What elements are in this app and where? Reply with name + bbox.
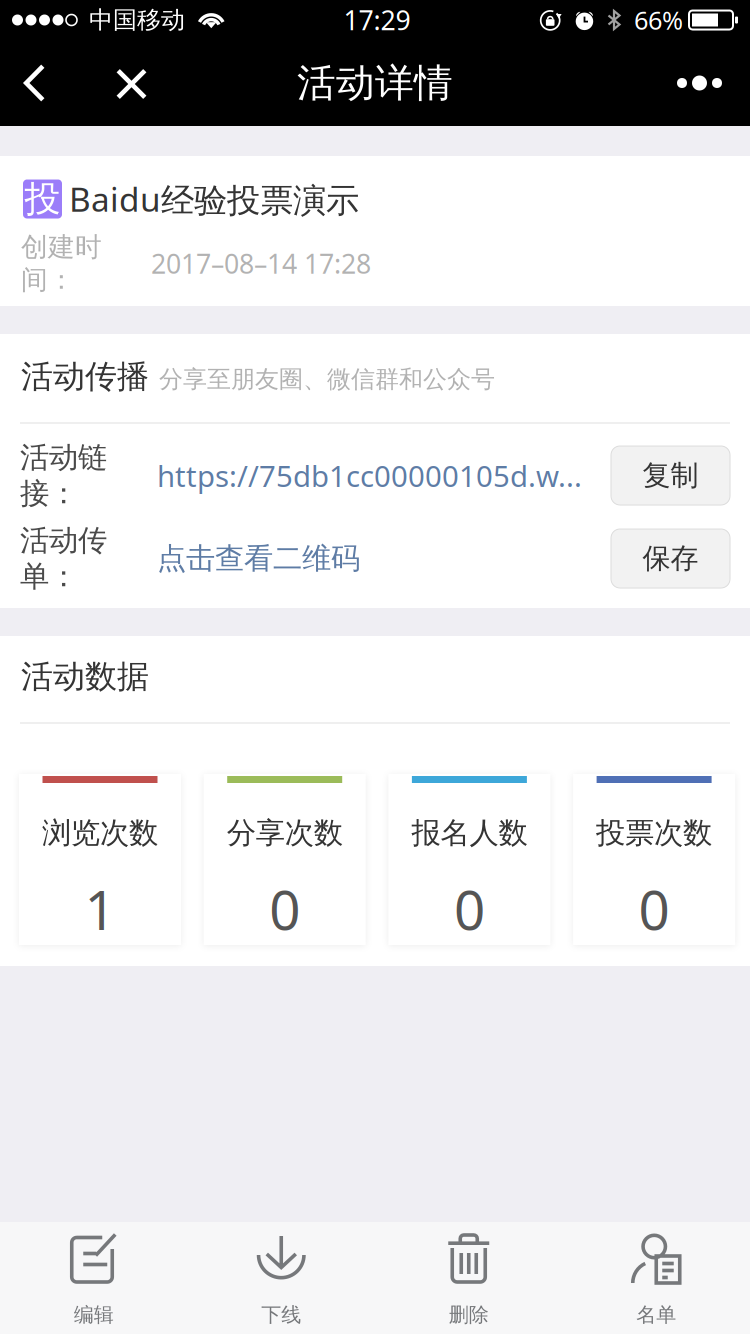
staticText: 活动详情 [297,59,453,107]
staticText: https://75db1cc00000105d.w... [157,456,582,495]
staticText: 0 [269,872,300,945]
staticText: 活动链接： [20,439,107,512]
staticText: 0 [639,872,670,945]
button[interactable]: 复制 [611,446,730,505]
staticText: 复制 [642,458,698,493]
button[interactable]: 删除 [375,1222,562,1334]
staticText: 分享至朋友圈、微信群和公众号 [159,365,495,394]
staticText: 66% [634,3,683,37]
staticText: 名单 [636,1302,676,1327]
staticText: 点击查看二维码 [157,540,360,576]
staticText: 删除 [449,1302,489,1327]
button[interactable]: 下线 [187,1222,375,1334]
staticText: 活动传播 [21,357,149,396]
staticText: 浏览次数 [42,815,158,851]
staticText: 活动传单： [20,522,107,595]
staticText: 下线 [261,1302,301,1327]
staticText: 0 [454,872,485,945]
staticText: 报名人数 [411,815,527,851]
button[interactable]: Back [0,40,94,126]
staticText: 分享次数 [227,815,343,851]
button[interactable]: 保存 [611,529,730,588]
staticText: 编辑 [74,1302,114,1327]
staticText: 保存 [642,541,698,576]
button[interactable]: 名单 [562,1222,750,1334]
staticText: 活动数据 [21,657,149,696]
staticText: 1 [84,872,115,945]
staticText: 2017–08–14 17:28 [151,246,371,281]
staticText: 中国移动 [89,5,185,35]
staticText: 创建时间： [21,231,102,296]
staticText: 投票次数 [596,815,712,851]
staticText: 17:29 [343,2,410,38]
button[interactable]: More [631,40,750,126]
staticText: Baidu经验投票演示 [69,177,359,221]
staticText: 投 [24,177,60,221]
button[interactable]: Close [94,40,169,126]
button[interactable]: 编辑 [0,1222,187,1334]
